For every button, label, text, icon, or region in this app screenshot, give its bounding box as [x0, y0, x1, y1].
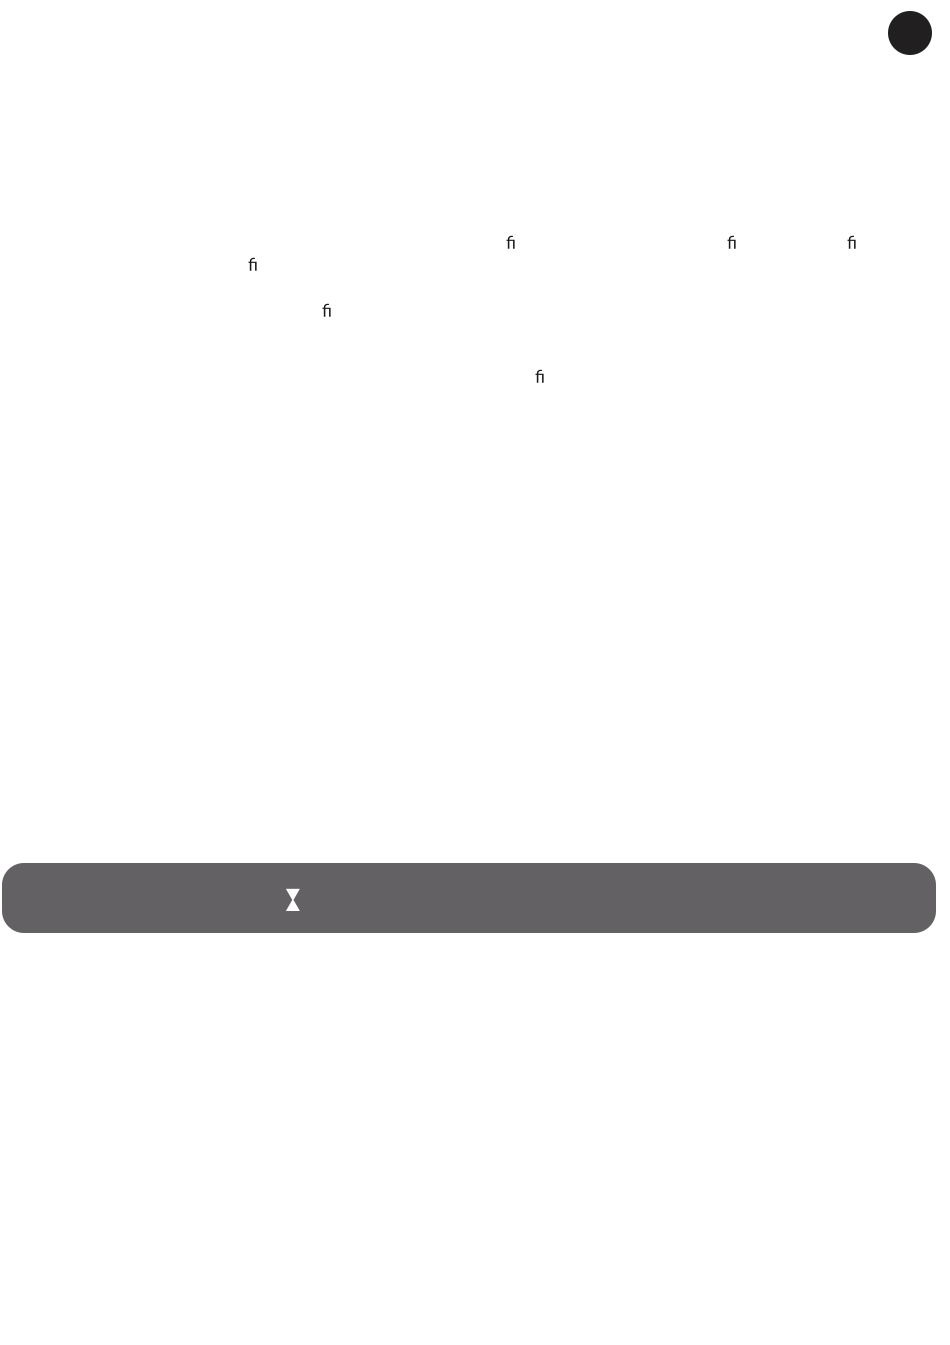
staticText: Proﬁle: [248, 254, 258, 274]
staticText: Veriﬁed: [847, 232, 857, 252]
staticText: Identiﬁer: [535, 366, 545, 386]
button[interactable]: Continue: [2, 863, 936, 933]
staticText: Speciﬁc: [322, 300, 332, 320]
staticText: Conﬁrm: [727, 232, 737, 252]
staticText: ⧗: [277, 868, 309, 922]
staticText: Notiﬁcations: [506, 232, 516, 252]
button[interactable]: Account: [888, 11, 932, 55]
